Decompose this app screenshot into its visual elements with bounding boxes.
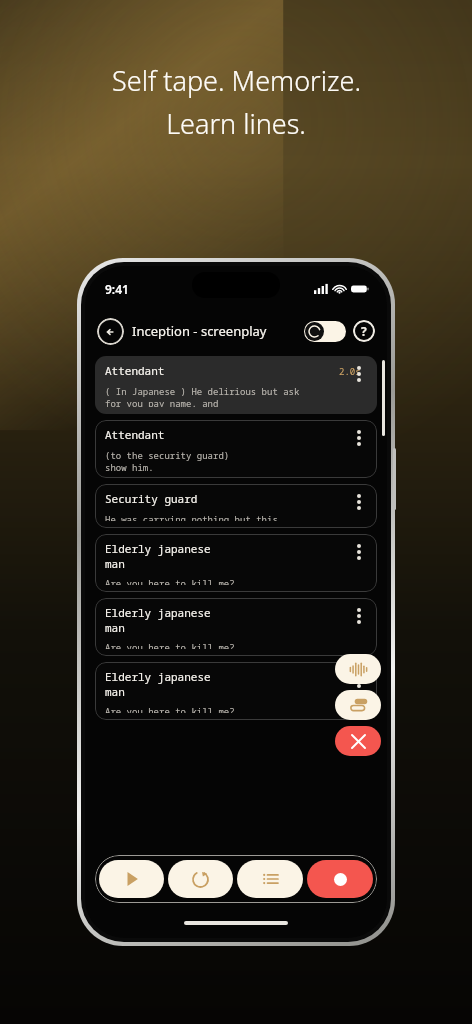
staticText: ( In Japanese ) He delirious but ask — [105, 385, 300, 397]
button[interactable]: Security guard — [95, 484, 377, 528]
staticText: Elderly japanese — [105, 669, 211, 684]
staticText: Elderly japanese — [105, 605, 211, 620]
button[interactable]: Attendant — [95, 356, 377, 414]
button[interactable]: Elderly japanese — [95, 598, 377, 656]
staticText: ? — [361, 323, 367, 339]
button[interactable]: Toggle dark mode — [304, 321, 346, 342]
button[interactable]: Close — [335, 726, 381, 756]
button[interactable]: Waveform — [335, 654, 381, 684]
button[interactable]: Elderly japanese — [95, 662, 377, 720]
staticText: Learn lines. — [166, 105, 306, 142]
staticText: 2.0s — [339, 365, 361, 377]
staticText: Are you here to kill me? — [105, 577, 235, 585]
staticText: Inception - screenplay — [132, 322, 304, 340]
button[interactable]: Help — [353, 320, 375, 342]
staticText: Security guard — [105, 491, 198, 506]
button[interactable]: Attendant — [95, 420, 377, 478]
button[interactable]: Line tape — [335, 690, 381, 720]
staticText: show him. — [105, 461, 154, 471]
button[interactable]: Replay — [168, 860, 233, 898]
button[interactable]: More options — [351, 427, 367, 449]
button[interactable]: More options — [351, 669, 367, 691]
staticText: 9:41 — [105, 281, 129, 297]
staticText: man — [105, 684, 125, 699]
staticText: man — [105, 620, 125, 635]
staticText: (to the security guard) — [105, 449, 230, 461]
button[interactable]: List — [237, 860, 303, 898]
staticText: Attendant — [105, 363, 165, 378]
staticText: Are you here to kill me? — [105, 641, 235, 649]
button[interactable]: More options — [351, 541, 367, 563]
button[interactable]: Play — [99, 860, 164, 898]
staticText: Are you here to kill me? — [105, 705, 235, 713]
button[interactable]: More options — [351, 491, 367, 513]
staticText: Attendant — [105, 427, 165, 442]
button[interactable]: Elderly japanese — [95, 534, 377, 592]
staticText: Self tape. Memorize. — [112, 62, 361, 99]
button[interactable]: Back — [97, 318, 124, 345]
button[interactable]: Record — [307, 860, 373, 898]
button[interactable]: More options — [351, 605, 367, 627]
button[interactable]: More options — [351, 363, 367, 385]
staticText: man — [105, 556, 125, 571]
staticText: Elderly japanese — [105, 541, 211, 556]
staticText: for you pay name. and — [105, 397, 219, 407]
staticText: He was carrying nothing but this — [105, 513, 278, 521]
